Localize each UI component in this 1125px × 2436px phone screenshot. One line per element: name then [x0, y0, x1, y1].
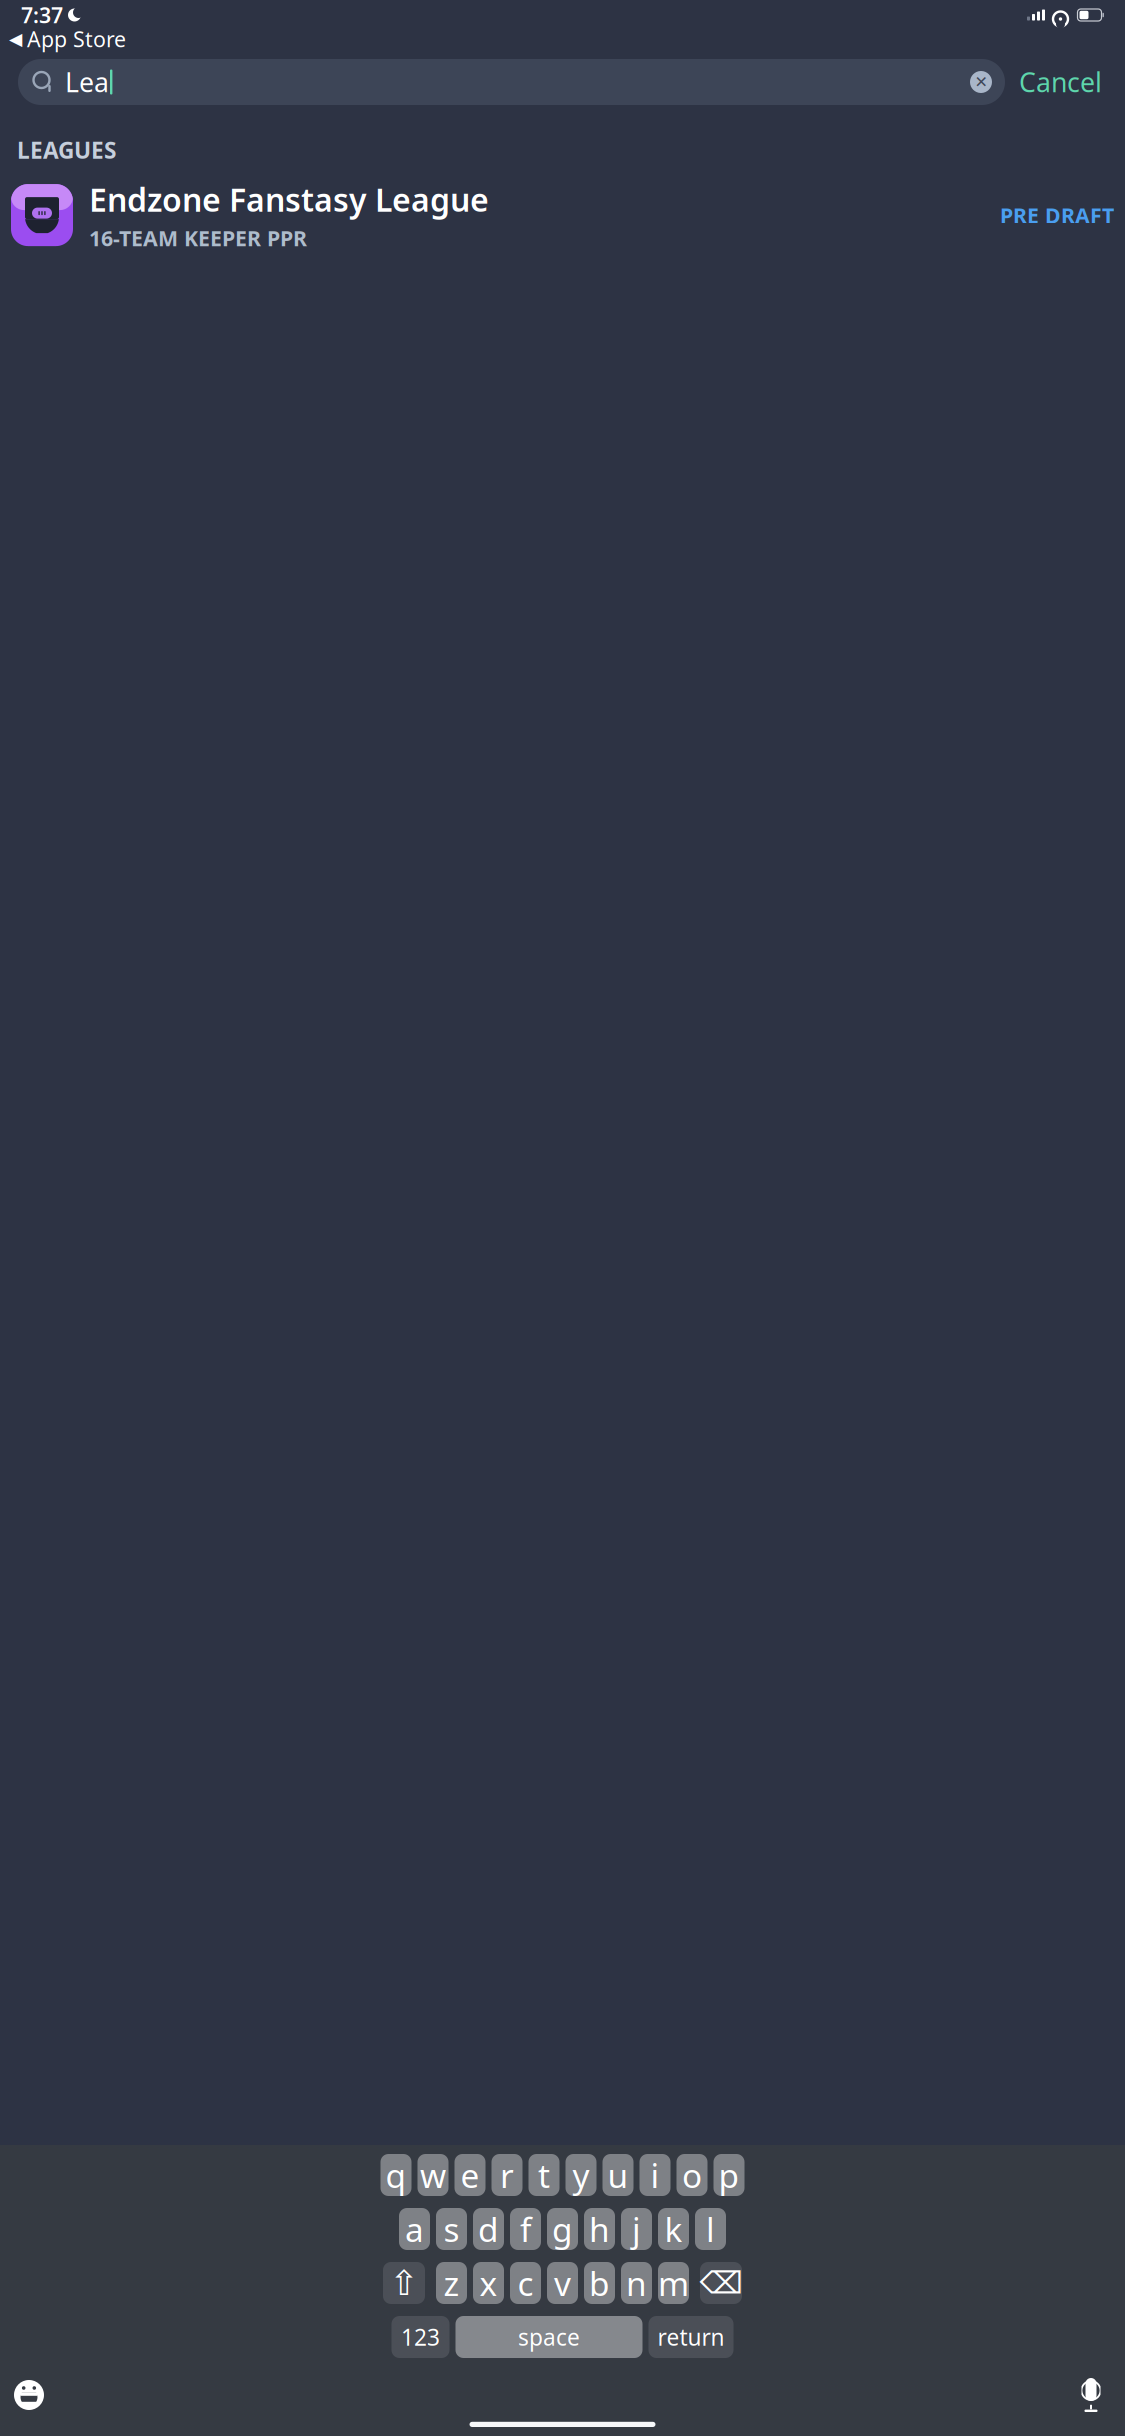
staticText: Endzone Fanstasy League — [89, 178, 489, 221]
button[interactable]: m — [658, 2262, 689, 2304]
button[interactable]: x — [473, 2262, 504, 2304]
staticText: q — [385, 2153, 406, 2197]
staticText: 7:37 — [21, 1, 63, 29]
staticText: ⇧ — [389, 2263, 418, 2303]
button[interactable]: v — [547, 2262, 578, 2304]
button[interactable]: z — [436, 2262, 467, 2304]
button[interactable]: l — [695, 2208, 726, 2250]
staticText: 16-TEAM KEEPER PPR — [89, 224, 307, 252]
staticText: k — [664, 2207, 682, 2251]
button[interactable]: f — [510, 2208, 541, 2250]
staticText: o — [682, 2153, 702, 2197]
button[interactable]: Endzone Fanstasy League — [0, 175, 1125, 255]
button[interactable]: c — [510, 2262, 541, 2304]
staticText: h — [589, 2207, 610, 2251]
staticText: x — [479, 2261, 497, 2305]
staticText: i — [650, 2153, 659, 2197]
button[interactable]: Delete — [700, 2262, 742, 2304]
button[interactable]: w — [417, 2154, 448, 2196]
staticText: c — [517, 2261, 533, 2305]
staticText: p — [718, 2153, 739, 2197]
button[interactable]: r — [491, 2154, 522, 2196]
button[interactable]: o — [676, 2154, 707, 2196]
button[interactable]: ◀ — [9, 25, 126, 53]
staticText: e — [460, 2153, 479, 2197]
staticText: App Store — [27, 25, 126, 53]
button[interactable]: y — [565, 2154, 596, 2196]
button[interactable]: h — [584, 2208, 615, 2250]
staticText: l — [706, 2207, 715, 2251]
button[interactable]: return — [648, 2316, 733, 2358]
staticText: b — [589, 2261, 610, 2305]
button[interactable]: 123 — [391, 2316, 449, 2358]
staticText: g — [552, 2207, 573, 2251]
button[interactable]: k — [658, 2208, 689, 2250]
staticText: 123 — [401, 2322, 440, 2352]
staticText: t — [538, 2153, 550, 2197]
button[interactable]: e — [454, 2154, 485, 2196]
button[interactable]: space — [455, 2316, 642, 2358]
button[interactable]: n — [621, 2262, 652, 2304]
button[interactable]: a — [399, 2208, 430, 2250]
staticText: y — [572, 2153, 589, 2197]
staticText: Lea — [65, 64, 109, 100]
button[interactable]: q — [380, 2154, 411, 2196]
button[interactable]: Emoji — [7, 2373, 51, 2417]
button[interactable]: b — [584, 2262, 615, 2304]
staticText: d — [478, 2207, 499, 2251]
staticText: a — [405, 2207, 424, 2251]
staticText: PRE DRAFT — [1000, 201, 1114, 229]
staticText: j — [632, 2207, 641, 2251]
button[interactable]: d — [473, 2208, 504, 2250]
staticText: f — [520, 2207, 531, 2251]
button[interactable]: s — [436, 2208, 467, 2250]
button[interactable]: p — [713, 2154, 744, 2196]
button[interactable]: Clear text — [966, 67, 996, 97]
staticText: u — [607, 2153, 628, 2197]
staticText: r — [500, 2153, 514, 2197]
button[interactable]: Cancel — [1005, 59, 1116, 105]
button[interactable]: u — [602, 2154, 633, 2196]
staticText: ✕ — [974, 73, 987, 91]
staticText: ◀ — [9, 29, 22, 49]
staticText: return — [657, 2322, 724, 2352]
button[interactable]: Shift — [383, 2262, 425, 2304]
button[interactable]: Dictation — [1069, 2373, 1113, 2417]
staticText: n — [626, 2261, 647, 2305]
button[interactable]: i — [639, 2154, 670, 2196]
staticText: z — [443, 2261, 459, 2305]
staticText: v — [554, 2261, 571, 2305]
button[interactable]: g — [547, 2208, 578, 2250]
staticText: s — [443, 2207, 459, 2251]
staticText: ⌫ — [699, 2266, 742, 2300]
staticText: m — [658, 2261, 689, 2305]
button[interactable]: j — [621, 2208, 652, 2250]
staticText: space — [518, 2322, 580, 2352]
staticText: LEAGUES — [17, 135, 116, 165]
staticText: Cancel — [1019, 64, 1102, 100]
button[interactable]: t — [528, 2154, 559, 2196]
staticText: w — [420, 2153, 446, 2197]
